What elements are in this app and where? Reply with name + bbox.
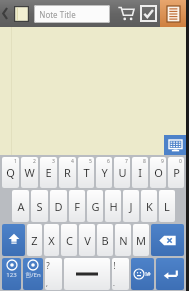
- staticText: ,: [46, 279, 48, 289]
- button[interactable]: 4: [59, 157, 76, 188]
- staticText: E: [45, 165, 52, 180]
- staticText: 9: [161, 158, 164, 165]
- staticText: Y: [101, 165, 108, 180]
- staticText: 한/En: [25, 271, 41, 279]
- staticText: B: [101, 233, 109, 248]
- button[interactable]: V: [79, 224, 95, 256]
- staticText: D: [54, 199, 63, 214]
- button[interactable]: 0: [168, 157, 184, 188]
- staticText: ?: [46, 260, 50, 271]
- button[interactable]: B: [97, 224, 113, 256]
- button[interactable]: 9: [150, 157, 166, 188]
- button[interactable]: Show keyboard: [0, 27, 186, 155]
- button[interactable]: L: [159, 190, 175, 222]
- button[interactable]: Symbols: [2, 258, 21, 290]
- button[interactable]: X: [44, 224, 59, 256]
- button[interactable]: Back: [0, 0, 11, 27]
- button[interactable]: A: [12, 190, 29, 222]
- button[interactable]: N: [115, 224, 131, 256]
- staticText: C: [66, 233, 73, 248]
- staticText: 5: [89, 158, 92, 165]
- staticText: R: [64, 165, 71, 180]
- button[interactable]: Emoji: [131, 258, 154, 290]
- button[interactable]: Show keyboard: [164, 135, 186, 155]
- button[interactable]: S: [31, 190, 48, 222]
- button[interactable]: 5: [78, 157, 94, 188]
- staticText: 7: [125, 158, 128, 165]
- button[interactable]: D: [50, 190, 67, 222]
- staticText: X: [48, 233, 55, 248]
- staticText: 4: [71, 158, 74, 165]
- button[interactable]: Note: [11, 3, 31, 24]
- staticText: 2: [33, 158, 36, 165]
- button[interactable]: Shift: [2, 224, 25, 256]
- button[interactable]: C: [61, 224, 77, 256]
- staticText: V: [84, 233, 91, 248]
- staticText: K: [146, 199, 153, 214]
- staticText: S: [36, 199, 43, 214]
- staticText: U: [118, 165, 127, 180]
- button[interactable]: Backspace: [151, 224, 184, 256]
- button[interactable]: M: [133, 224, 149, 256]
- button[interactable]: 1: [2, 157, 19, 188]
- staticText: O: [154, 165, 163, 180]
- staticText: 3: [52, 158, 55, 165]
- button[interactable]: 7: [114, 157, 130, 188]
- button[interactable]: Note editor: [160, 0, 186, 27]
- staticText: 123: [6, 271, 17, 279]
- staticText: 0: [179, 158, 182, 165]
- button[interactable]: 2: [21, 157, 38, 188]
- staticText: N: [119, 233, 128, 248]
- button[interactable]: 6: [96, 157, 112, 188]
- button[interactable]: H: [105, 190, 121, 222]
- button[interactable]: K: [141, 190, 157, 222]
- staticText: Q: [6, 165, 15, 180]
- staticText: A: [17, 199, 25, 214]
- staticText: !#: [145, 270, 151, 278]
- button[interactable]: 3: [40, 157, 57, 188]
- button[interactable]: Shopping list: [114, 0, 137, 27]
- staticText: H: [109, 199, 118, 214]
- staticText: Z: [31, 233, 38, 248]
- button[interactable]: F: [69, 190, 85, 222]
- staticText: !: [113, 260, 116, 271]
- button[interactable]: Checklist: [137, 0, 160, 27]
- staticText: T: [83, 165, 90, 180]
- button[interactable]: Note Title: [34, 5, 110, 23]
- button[interactable]: Enter: [156, 258, 184, 290]
- button[interactable]: Z: [27, 224, 42, 256]
- staticText: Note Title: [39, 9, 76, 20]
- button[interactable]: ?: [45, 258, 62, 290]
- button[interactable]: !: [112, 258, 129, 290]
- button[interactable]: [64, 258, 110, 290]
- staticText: M: [136, 233, 146, 248]
- button[interactable]: Change language: [23, 258, 43, 290]
- staticText: G: [91, 199, 100, 214]
- staticText: .: [113, 279, 115, 289]
- button[interactable]: 8: [132, 157, 148, 188]
- staticText: I: [138, 165, 142, 180]
- staticText: 6: [107, 158, 110, 165]
- staticText: 1: [14, 158, 17, 165]
- staticText: W: [24, 165, 35, 180]
- button[interactable]: G: [87, 190, 103, 222]
- staticText: 8: [143, 158, 146, 165]
- staticText: J: [129, 199, 133, 214]
- button[interactable]: J: [123, 190, 139, 222]
- staticText: P: [173, 165, 180, 180]
- staticText: F: [74, 199, 80, 214]
- staticText: L: [164, 199, 170, 214]
